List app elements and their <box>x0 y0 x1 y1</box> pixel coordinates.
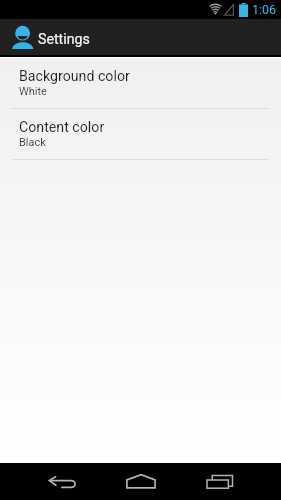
staticText: Background color <box>19 68 130 85</box>
button[interactable]: Recent apps <box>180 463 259 500</box>
staticText: Content color <box>19 119 105 136</box>
staticText: Settings <box>38 31 90 48</box>
button[interactable]: Back <box>23 463 102 500</box>
button[interactable]: Home <box>101 463 180 500</box>
button[interactable]: Settings <box>0 19 281 55</box>
button[interactable]: Content color <box>0 109 281 159</box>
staticText: 1:06 <box>252 2 277 17</box>
button[interactable]: Background color <box>0 58 281 108</box>
staticText: Black <box>19 136 46 149</box>
staticText: White <box>19 85 47 98</box>
